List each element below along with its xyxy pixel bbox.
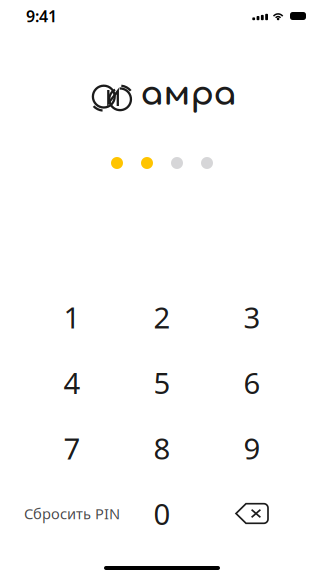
staticText: 7 [63,428,80,467]
button[interactable]: 1 [27,289,117,345]
staticText: 9:41 [26,5,57,27]
staticText: 5 [153,363,170,402]
button[interactable]: 3 [207,289,297,345]
staticText: 9 [243,428,260,467]
button[interactable]: 6 [207,354,297,410]
button[interactable]: 2 [117,289,207,345]
button[interactable]: 4 [27,354,117,410]
button[interactable]: Удалить [207,485,297,541]
staticText: 6 [243,363,260,402]
staticText: Сбросить PIN [24,504,120,523]
button[interactable]: 7 [27,420,117,476]
staticText: 1 [63,297,80,336]
staticText: 4 [63,363,80,402]
button[interactable]: Сбросить PIN [19,485,125,541]
staticText: 0 [153,494,170,533]
staticText: 2 [153,297,170,336]
button[interactable]: 5 [117,354,207,410]
button[interactable]: 9 [207,420,297,476]
button[interactable]: 0 [117,485,207,541]
staticText: 3 [243,297,260,336]
staticText: амра [140,75,236,113]
staticText: 8 [153,428,170,467]
button[interactable]: 8 [117,420,207,476]
